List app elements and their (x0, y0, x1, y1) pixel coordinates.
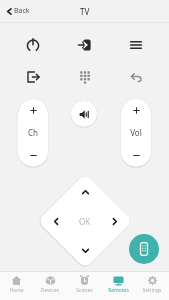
button[interactable]: Vol up (121, 99, 151, 121)
staticText: Scenes (76, 287, 93, 294)
button[interactable]: Devices (33, 272, 67, 300)
button[interactable]: Open remote (129, 234, 159, 264)
button[interactable]: Right (105, 212, 123, 230)
staticText: Remotes (108, 287, 129, 294)
staticText: Ch (28, 127, 38, 138)
staticText: Devices (41, 287, 59, 294)
staticText: TV (80, 6, 90, 17)
button[interactable]: Left (47, 212, 65, 230)
button[interactable]: Return (118, 62, 154, 92)
staticText: Vol (130, 127, 142, 138)
staticText: OK (79, 216, 91, 227)
staticText: Back (14, 6, 30, 16)
button[interactable]: Exit (15, 62, 51, 92)
button[interactable]: OK (72, 208, 98, 234)
button[interactable]: Down (76, 241, 94, 259)
button[interactable]: Remotes (101, 272, 135, 300)
button[interactable]: Ch up (18, 99, 48, 121)
staticText: Settings (142, 287, 162, 294)
button[interactable]: Vol down (121, 144, 151, 167)
button[interactable]: Mute (71, 101, 97, 127)
button[interactable]: Back (3, 3, 33, 19)
button[interactable]: Input source (67, 30, 103, 60)
button[interactable]: Settings (135, 272, 169, 300)
button[interactable]: Scenes (67, 272, 101, 300)
button[interactable]: Menu (118, 30, 154, 60)
button[interactable]: Power (15, 30, 51, 60)
button[interactable]: Up (76, 183, 94, 201)
button[interactable]: Home (0, 272, 33, 300)
staticText: Home (9, 287, 24, 294)
button[interactable]: Keypad (67, 62, 103, 92)
button[interactable]: Ch down (18, 144, 48, 167)
